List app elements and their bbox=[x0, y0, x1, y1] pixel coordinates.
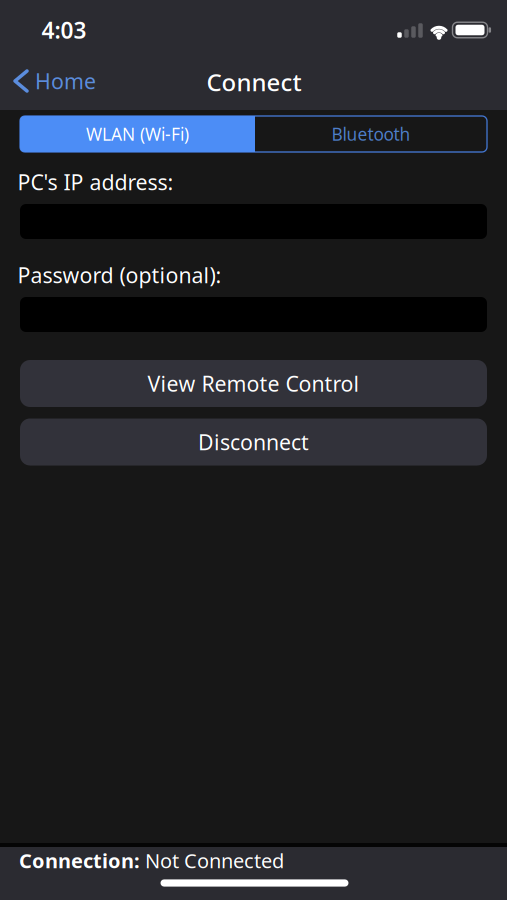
staticText: Connect bbox=[206, 66, 301, 98]
button[interactable]: Disconnect bbox=[20, 418, 487, 465]
button[interactable]: Bluetooth bbox=[255, 116, 487, 152]
staticText: Not Connected bbox=[145, 847, 284, 874]
button[interactable]: View Remote Control bbox=[20, 360, 487, 407]
staticText: Connection: bbox=[19, 847, 145, 874]
staticText: Password (optional): bbox=[17, 261, 221, 289]
button[interactable]: WLAN (Wi-Fi) bbox=[20, 116, 255, 152]
staticText: Disconnect bbox=[198, 428, 309, 456]
staticText: View Remote Control bbox=[147, 369, 359, 398]
button[interactable]: Home bbox=[15, 67, 96, 95]
staticText: 4:03 bbox=[41, 15, 86, 45]
staticText: PC's IP address: bbox=[17, 168, 173, 196]
staticText: Home bbox=[35, 67, 96, 95]
staticText: Bluetooth bbox=[331, 122, 410, 145]
staticText: WLAN (Wi-Fi) bbox=[86, 122, 189, 145]
